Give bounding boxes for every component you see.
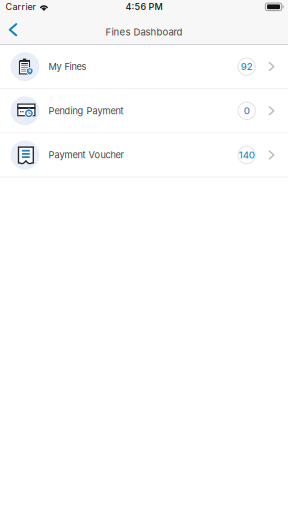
staticText: 4:56 PM — [125, 1, 162, 12]
button[interactable]: My Fines — [0, 45, 288, 89]
staticText: Pending Payment — [48, 105, 123, 116]
staticText: Carrier — [6, 1, 36, 12]
staticText: 92 — [241, 61, 253, 72]
staticText: Payment Voucher — [48, 149, 123, 160]
staticText: 0 — [244, 105, 250, 117]
button[interactable]: Pending Payment — [0, 89, 288, 133]
staticText: 140 — [239, 149, 255, 161]
staticText: My Fines — [48, 61, 86, 72]
button[interactable]: Back — [0, 20, 26, 44]
button[interactable]: Payment Voucher — [0, 133, 288, 178]
staticText: Fines Dashboard — [105, 26, 182, 38]
